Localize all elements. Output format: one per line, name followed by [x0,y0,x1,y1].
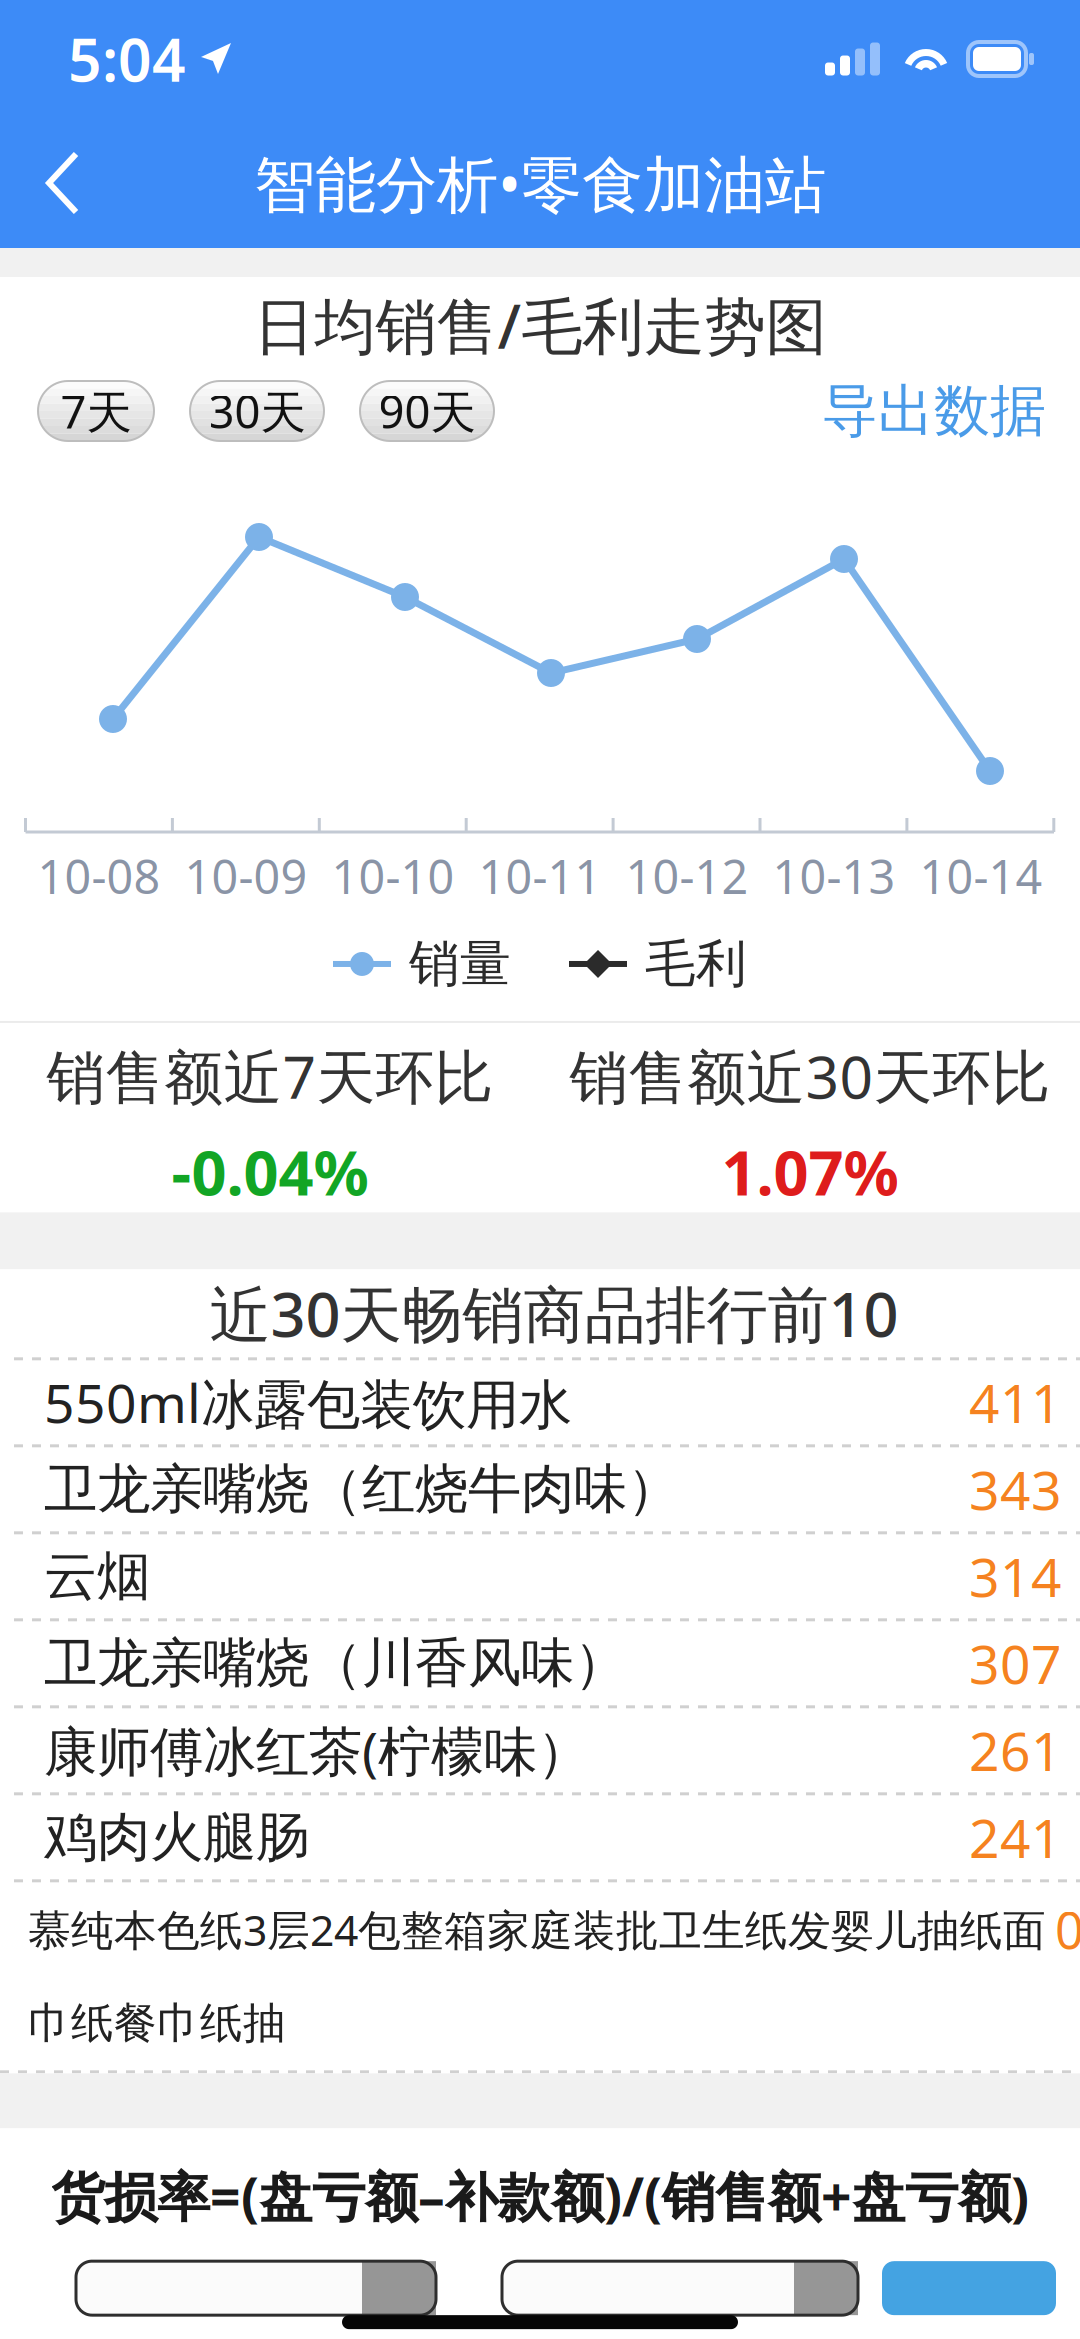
staticText: 10-14 [919,845,1042,907]
button[interactable]: 导出数据 [822,377,1046,445]
button[interactable]: 550ml冰露包装饮用水 [14,1360,1080,1447]
staticText: 10-11 [478,845,601,907]
staticText: 314 [969,1541,1062,1612]
staticText: 鸡肉火腿肠 [44,1805,309,1870]
staticText: 0 [1055,1896,1080,1963]
button[interactable]: 慕纯本色纸3层24包整箱家庭装批卫生纸发婴儿抽纸面 [0,1882,1080,2073]
button[interactable]: Submit [882,2261,1056,2315]
staticText: 慕纯本色纸3层24包整箱家庭装批卫生纸发婴儿抽纸面 [28,1901,1046,1958]
staticText: 10-10 [331,845,454,907]
staticText: 导出数据 [822,377,1046,445]
button[interactable]: 卫龙亲嘴烧（红烧牛肉味） [14,1447,1080,1534]
staticText: 巾纸餐巾纸抽 [28,1997,286,2049]
staticText: 云烟 [44,1544,150,1609]
staticText: 550ml冰露包装饮用水 [44,1367,572,1438]
staticText: 卫龙亲嘴烧（红烧牛肉味） [44,1457,680,1522]
staticText: 241 [969,1802,1062,1873]
staticText: 307 [969,1628,1062,1699]
staticText: 销售额近30天环比 [569,1037,1050,1115]
button[interactable]: Back [0,118,108,248]
staticText: 销量 [409,933,511,995]
staticText: 康师傅冰红茶(柠檬味） [44,1715,590,1786]
staticText: 货损率=(盘亏额–补款额)/(销售额+盘亏额) [51,2160,1029,2231]
staticText: 卫龙亲嘴烧（川香风味） [44,1631,627,1696]
staticText: 智能分析•零食加油站 [254,142,826,224]
staticText: 1.07% [721,1131,898,1212]
staticText: 5:04 [68,20,186,98]
staticText: 411 [969,1367,1062,1438]
button[interactable]: 90天 [360,381,494,441]
staticText: 261 [969,1715,1062,1786]
staticText: 10-12 [625,845,748,907]
staticText: 90天 [378,381,475,441]
staticText: 7天 [60,381,131,441]
button[interactable]: 7天 [38,381,154,441]
staticText: 343 [969,1454,1062,1525]
staticText: 10-08 [37,845,160,907]
staticText: 毛利 [645,933,747,995]
button[interactable]: 云烟 [14,1534,1080,1621]
staticText: 30天 [208,381,305,441]
staticText: 日均销售/毛利走势图 [253,284,826,366]
staticText: 销售额近7天环比 [46,1037,493,1115]
button[interactable]: 鸡肉火腿肠 [14,1795,1080,1882]
button[interactable]: 30天 [190,381,324,441]
button[interactable]: 卫龙亲嘴烧（川香风味） [14,1621,1080,1708]
staticText: 10-09 [184,845,307,907]
staticText: -0.04% [171,1131,368,1212]
staticText: 10-13 [772,845,895,907]
button[interactable]: 康师傅冰红茶(柠檬味） [14,1708,1080,1795]
staticText: 近30天畅销商品排行前10 [209,1273,898,1354]
